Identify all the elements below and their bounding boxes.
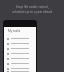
button[interactable] [4, 71, 36, 72]
staticText: My tasks [8, 29, 21, 33]
button[interactable] [4, 46, 36, 51]
button[interactable] [4, 56, 36, 61]
staticText: Keep life under control, [16, 5, 49, 9]
button[interactable] [4, 41, 36, 46]
button[interactable] [4, 66, 36, 71]
button[interactable] [4, 61, 36, 66]
button[interactable] [4, 51, 36, 56]
staticText: schedule up to a year ahead [12, 10, 52, 14]
button[interactable] [4, 36, 36, 41]
